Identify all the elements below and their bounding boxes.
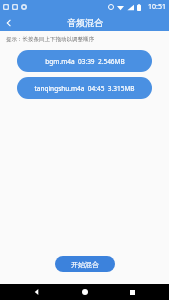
button[interactable]: Back xyxy=(0,14,17,31)
button[interactable]: Recent apps xyxy=(122,284,142,300)
staticText: tanqingshu.m4a 04:45 3.315MB xyxy=(34,84,135,93)
staticText: 提示：长按条目上下拖动以调整顺序 xyxy=(6,36,94,43)
staticText: 开始混合 xyxy=(71,260,99,269)
button[interactable]: Home xyxy=(75,284,95,300)
button[interactable]: tanqingshu.m4a 04:45 3.315MB xyxy=(17,77,152,99)
staticText: 10:51 xyxy=(148,2,166,12)
staticText: bgm.m4a 03:39 2.546MB xyxy=(45,57,125,66)
staticText: 音频混合 xyxy=(67,17,103,28)
button[interactable]: bgm.m4a 03:39 2.546MB xyxy=(17,50,152,72)
button[interactable]: 开始混合 xyxy=(55,256,115,272)
button[interactable]: Back xyxy=(27,284,47,300)
